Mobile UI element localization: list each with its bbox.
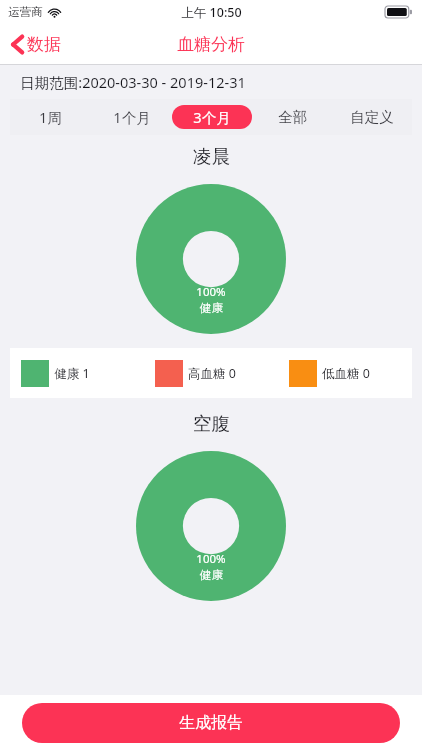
staticText: 自定义 bbox=[350, 108, 394, 126]
staticText: 凌晨 bbox=[193, 145, 230, 168]
staticText: 3个月 bbox=[193, 107, 231, 127]
staticText: 运营商 bbox=[8, 5, 43, 19]
staticText: 健康 1 bbox=[54, 365, 90, 382]
staticText: 上午 10:50 bbox=[181, 4, 242, 21]
staticText: 高血糖 0 bbox=[188, 365, 236, 382]
button[interactable]: 数据 bbox=[0, 24, 71, 64]
staticText: 1个月 bbox=[113, 107, 151, 127]
button[interactable]: 全部 bbox=[252, 99, 332, 135]
staticText: 空腹 bbox=[193, 412, 230, 435]
staticText: 健康 bbox=[200, 568, 223, 582]
staticText: 日期范围:2020-03-30 - 2019-12-31 bbox=[20, 72, 246, 92]
button[interactable]: 生成报告 bbox=[22, 703, 400, 743]
staticText: 100% bbox=[196, 284, 226, 300]
staticText: 数据 bbox=[27, 34, 61, 55]
staticText: 全部 bbox=[278, 108, 307, 126]
staticText: 血糖分析 bbox=[177, 34, 245, 55]
button[interactable]: 3个月 bbox=[172, 99, 252, 135]
staticText: 低血糖 0 bbox=[322, 365, 370, 382]
staticText: 1周 bbox=[39, 107, 62, 127]
staticText: 生成报告 bbox=[179, 713, 243, 733]
button[interactable]: 1个月 bbox=[91, 99, 172, 135]
staticText: 100% bbox=[196, 551, 226, 567]
button[interactable]: 自定义 bbox=[332, 99, 412, 135]
staticText: 健康 bbox=[200, 301, 223, 315]
button[interactable]: 1周 bbox=[10, 99, 91, 135]
